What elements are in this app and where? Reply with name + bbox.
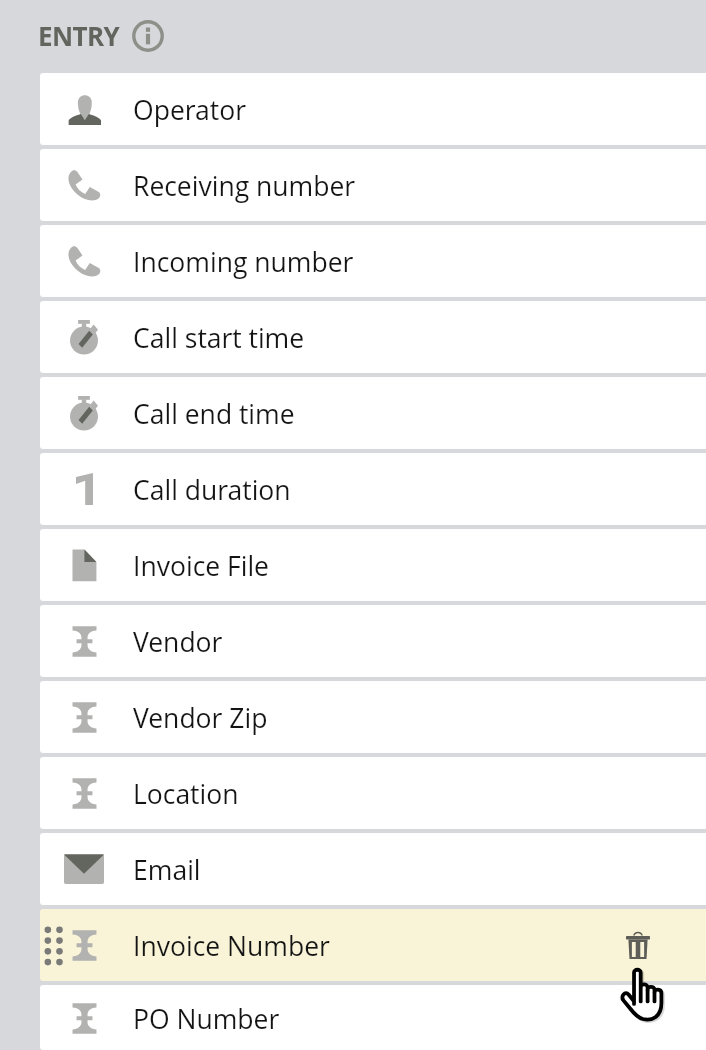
button[interactable]: PO Number xyxy=(40,985,706,1050)
staticText: Incoming number xyxy=(133,244,354,280)
staticText: ENTRY xyxy=(38,18,120,53)
staticText: PO Number xyxy=(133,1001,280,1037)
staticText: Email xyxy=(133,852,201,888)
button[interactable]: Receiving number xyxy=(40,149,706,221)
button[interactable]: Invoice Number xyxy=(40,909,706,981)
button[interactable]: Delete xyxy=(612,919,664,971)
button[interactable]: Call end time xyxy=(40,377,706,449)
button[interactable]: Location xyxy=(40,757,706,829)
button[interactable]: Incoming number xyxy=(40,225,706,297)
button[interactable]: Email xyxy=(40,833,706,905)
staticText: Call duration xyxy=(133,472,291,508)
staticText: Invoice Number xyxy=(133,928,330,964)
staticText: Vendor Zip xyxy=(133,700,268,736)
button[interactable]: Invoice File xyxy=(40,529,706,601)
staticText: Receiving number xyxy=(133,168,356,204)
button[interactable]: Call duration xyxy=(40,453,706,525)
button[interactable]: Call start time xyxy=(40,301,706,373)
staticText: Vendor xyxy=(133,624,223,660)
button[interactable]: Vendor xyxy=(40,605,706,677)
button[interactable]: Information xyxy=(132,20,164,52)
staticText: Invoice File xyxy=(133,548,269,584)
staticText: Call end time xyxy=(133,396,295,432)
staticText: Location xyxy=(133,776,239,812)
button[interactable]: Operator xyxy=(40,73,706,145)
staticText: Call start time xyxy=(133,320,305,356)
button[interactable]: Vendor Zip xyxy=(40,681,706,753)
staticText: Operator xyxy=(133,92,246,128)
